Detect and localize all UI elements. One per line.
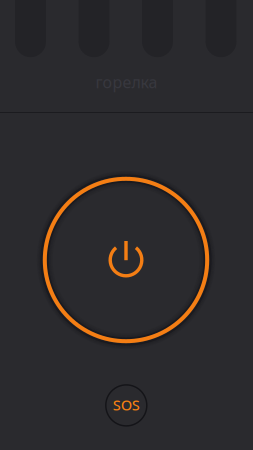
staticText: SOS <box>113 395 140 415</box>
staticText: горелка <box>95 71 157 93</box>
button[interactable]: Power <box>35 169 217 351</box>
button[interactable]: SOS <box>97 376 155 434</box>
